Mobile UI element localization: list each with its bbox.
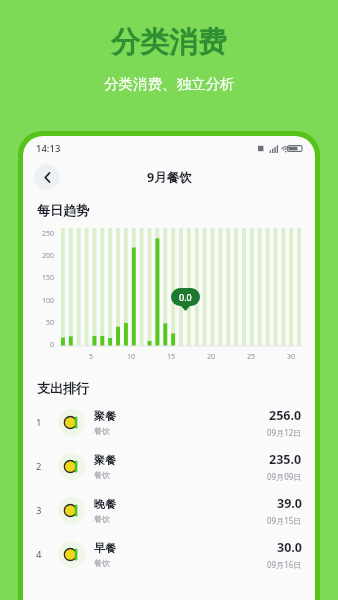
staticText: 餐饮	[94, 514, 110, 524]
button[interactable]: Back	[34, 164, 60, 190]
staticText: 39.0	[277, 495, 302, 512]
staticText: 聚餐	[94, 409, 116, 423]
staticText: 0.0	[179, 291, 192, 303]
staticText: 256.0	[269, 407, 302, 424]
staticText: 4	[36, 548, 42, 561]
button[interactable]: 4	[23, 532, 315, 576]
staticText: 聚餐	[94, 453, 116, 467]
staticText: 3	[36, 504, 42, 517]
staticText: 09月12日	[267, 427, 302, 438]
staticText: 30	[287, 352, 295, 362]
staticText: 1	[36, 416, 42, 429]
staticText: 10	[127, 352, 135, 362]
staticText: 2	[36, 460, 42, 473]
staticText: 30.0	[277, 539, 302, 556]
staticText: 20	[207, 352, 215, 362]
staticText: 200	[42, 251, 55, 261]
staticText: 0	[50, 340, 55, 350]
staticText: 5	[89, 352, 94, 362]
staticText: 25	[247, 352, 255, 362]
staticText: 餐饮	[94, 470, 110, 480]
staticText: 150	[42, 273, 55, 283]
staticText: 支出排行	[37, 380, 89, 396]
staticText: 100	[42, 296, 55, 306]
button[interactable]: 3	[23, 488, 315, 532]
button[interactable]: 1	[23, 400, 315, 444]
staticText: 14:13	[36, 142, 61, 155]
staticText: 晚餐	[94, 497, 116, 511]
staticText: 早餐	[94, 541, 116, 555]
staticText: 每日趋势	[37, 202, 89, 218]
staticText: 50	[46, 318, 55, 328]
staticText: 235.0	[269, 451, 302, 468]
staticText: 15	[167, 352, 175, 362]
staticText: 09月15日	[267, 515, 302, 526]
staticText: 分类消费	[111, 24, 227, 61]
staticText: 餐饮	[94, 426, 110, 436]
staticText: 分类消费、独立分析	[104, 75, 235, 93]
staticText: 餐饮	[94, 558, 110, 568]
staticText: 09月16日	[267, 559, 302, 570]
staticText: 250	[42, 229, 55, 239]
staticText: 9月餐饮	[147, 169, 192, 186]
staticText: 09月09日	[267, 471, 302, 482]
button[interactable]: 2	[23, 444, 315, 488]
